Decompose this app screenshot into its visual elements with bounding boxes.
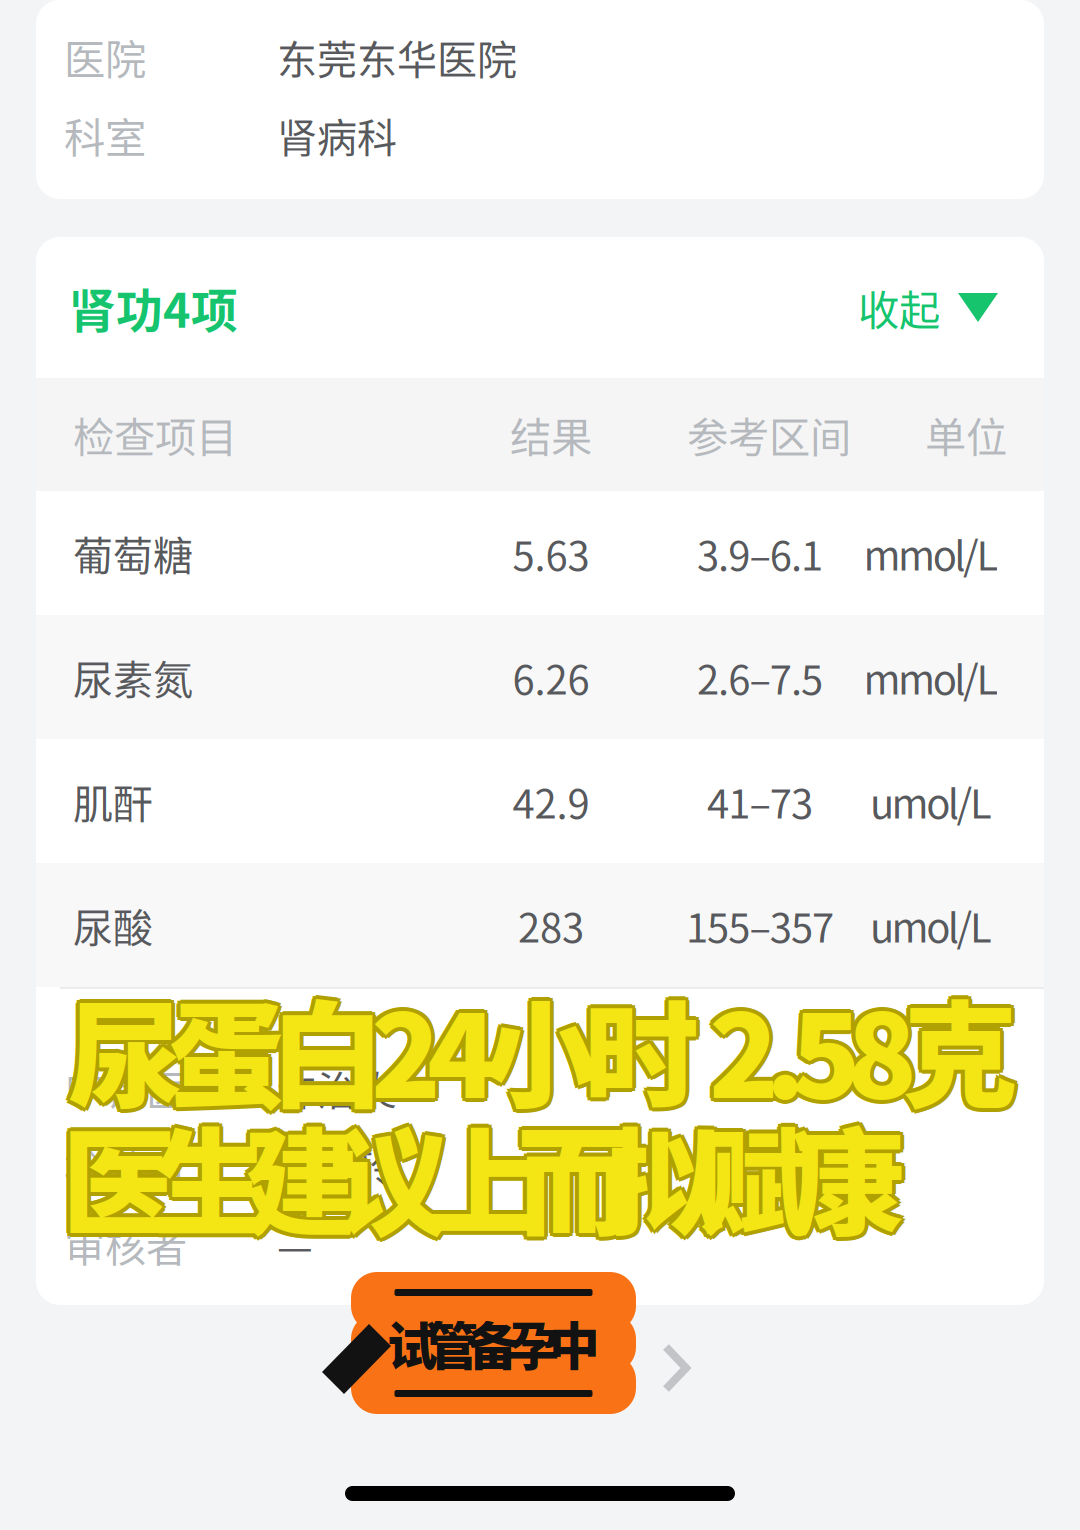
staticText: —	[277, 1215, 313, 1273]
staticText: 检验者	[64, 1136, 187, 1196]
staticText: 医生建议上而拟赋康	[65, 1089, 908, 1255]
staticText: mmol/L	[863, 648, 998, 706]
staticText: 单位	[925, 405, 1007, 464]
button[interactable]: 肾功4项	[36, 237, 1044, 378]
staticText: 3.9–6.1	[697, 524, 823, 582]
staticText: 申请医生	[64, 1058, 228, 1118]
staticText: 尿蛋白24小时 2.58克	[72, 965, 1022, 1131]
staticText: 医生建议上而拟赋康	[58, 1092, 901, 1258]
staticText: 医生建议上而拟赋康	[59, 1095, 902, 1261]
staticText: 张建玲	[277, 1137, 397, 1195]
staticText: 医生建议上而拟赋康	[62, 1088, 905, 1254]
staticText: 东莞东华医院	[277, 28, 517, 86]
staticText: 尿蛋白24小时 2.58克	[64, 965, 1014, 1131]
staticText: 许治炎	[277, 1059, 397, 1117]
staticText: 6.26	[512, 648, 589, 706]
staticText: 医院	[64, 27, 146, 87]
staticText: 医生建议上而拟赋康	[62, 1092, 905, 1258]
staticText: 尿酸	[73, 896, 153, 954]
staticText: 155–357	[686, 896, 834, 954]
staticText: 42.9	[512, 772, 589, 830]
staticText: 2.6–7.5	[697, 648, 823, 706]
staticText: 肾功4项	[69, 274, 238, 341]
staticText: 葡萄糖	[73, 524, 193, 582]
staticText: 结果	[510, 405, 592, 464]
staticText: mmol/L	[863, 524, 998, 582]
staticText: 检查项目	[73, 405, 237, 464]
staticText: umol/L	[870, 896, 992, 954]
staticText: 283	[518, 896, 584, 954]
staticText: 尿蛋白24小时 2.58克	[65, 962, 1015, 1128]
staticText: 41–73	[707, 772, 813, 830]
staticText: 参考区间	[687, 405, 851, 464]
staticText: 尿蛋白24小时 2.58克	[65, 968, 1015, 1134]
staticText: 5.63	[512, 524, 589, 582]
staticText: 医生建议上而拟赋康	[62, 1096, 905, 1262]
staticText: 科室	[64, 105, 146, 165]
staticText: 肾病科	[277, 106, 397, 164]
staticText: 收起	[858, 278, 940, 337]
staticText: 医生建议上而拟赋康	[59, 1089, 902, 1255]
staticText: 审核者	[64, 1214, 187, 1274]
staticText: 尿蛋白24小时 2.58克	[68, 969, 1018, 1135]
staticText: 尿蛋白24小时 2.58克	[71, 968, 1021, 1134]
staticText: 尿蛋白24小时 2.58克	[68, 961, 1018, 1127]
staticText: 尿蛋白24小时 2.58克	[68, 965, 1018, 1131]
staticText: 尿蛋白24小时 2.58克	[71, 962, 1021, 1128]
staticText: 肌酐	[73, 772, 153, 830]
staticText: 医生建议上而拟赋康	[65, 1095, 908, 1261]
staticText: umol/L	[870, 772, 992, 830]
staticText: 尿素氮	[73, 648, 193, 706]
staticText: 医生建议上而拟赋康	[66, 1092, 909, 1258]
staticText: 试管备孕中	[387, 1306, 600, 1380]
